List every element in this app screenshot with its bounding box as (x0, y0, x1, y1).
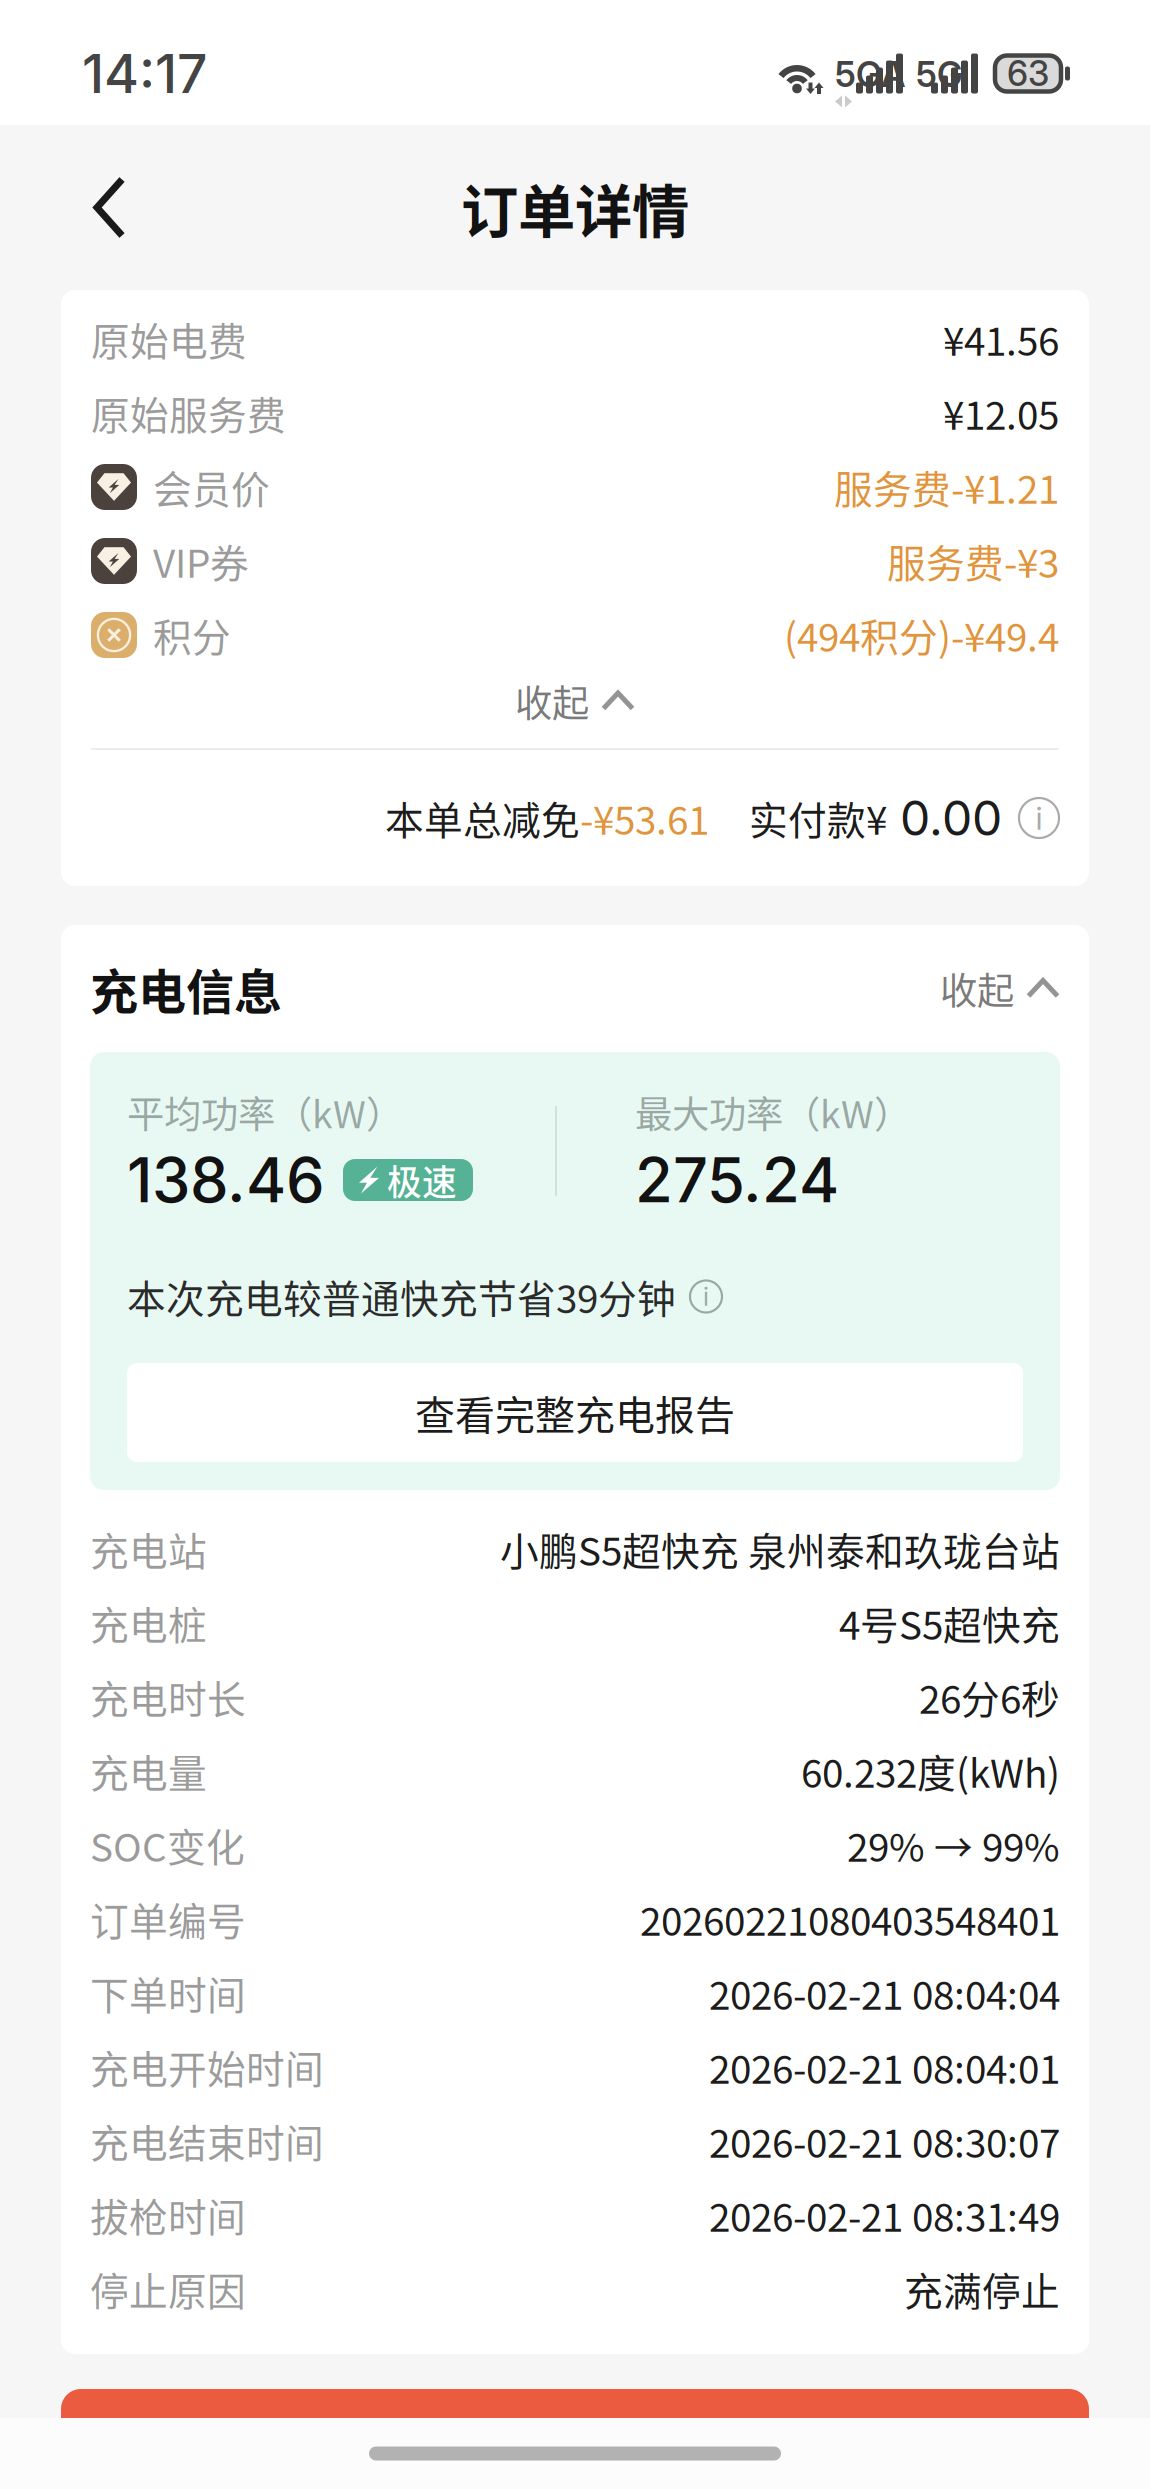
staticText: 订单详情 (461, 166, 689, 249)
staticText: 积分 (153, 607, 231, 663)
staticText: 60.232度(kWh) (801, 1743, 1060, 1799)
staticText: 原始服务费 (91, 385, 286, 441)
staticText: 收起 (940, 961, 1014, 1016)
staticText: VIP券 (153, 533, 249, 589)
staticText: 2026-02-21 08:30:07 (709, 2113, 1060, 2169)
button[interactable]: Back (72, 150, 150, 264)
staticText: 4号S5超快充 (839, 1595, 1060, 1651)
staticText: 5G (916, 53, 963, 95)
staticText: 本次充电较普通快充节省39分钟 (127, 1268, 676, 1324)
staticText: 26分6秒 (919, 1669, 1060, 1725)
staticText: 14:17 (82, 41, 207, 106)
staticText: 0.00 (900, 789, 1002, 847)
staticText: i (703, 1281, 709, 1312)
staticText: 服务费-¥3 (887, 533, 1059, 589)
button[interactable]: Promotion (61, 2389, 1089, 2489)
staticText: 订单编号 (90, 1891, 246, 1947)
staticText: -¥53.61 (580, 790, 709, 846)
button[interactable]: 收起 (91, 672, 1059, 748)
staticText: 实付款¥ (749, 790, 887, 846)
staticText: 63 (1007, 52, 1049, 94)
staticText: 2026-02-21 08:31:49 (709, 2187, 1060, 2243)
button[interactable]: 查看完整充电报告 (127, 1363, 1023, 1462)
staticText: SOC变化 (90, 1817, 245, 1873)
staticText: 收起 (515, 674, 589, 728)
staticText: 2026-02-21 08:04:01 (709, 2039, 1060, 2095)
staticText: ¥12.05 (943, 385, 1059, 441)
staticText: 充电结束时间 (90, 2113, 324, 2169)
staticText: 查看完整充电报告 (415, 1383, 735, 1441)
staticText: 下单时间 (90, 1965, 246, 2021)
staticText: ¥41.56 (943, 311, 1059, 367)
staticText: (494积分)-¥49.4 (784, 607, 1059, 663)
staticText: 会员价 (153, 459, 270, 515)
staticText: 275.24 (635, 1143, 839, 1217)
button[interactable]: 收起 (940, 961, 1060, 1016)
staticText: 138.46 (127, 1143, 325, 1217)
staticText: 20260221080403548401 (640, 1891, 1060, 1947)
staticText: 本单总减免 (385, 790, 580, 846)
staticText: 充电时长 (90, 1669, 246, 1725)
staticText: 极速 (387, 1155, 457, 1205)
staticText: 充电量 (90, 1743, 207, 1799)
staticText: 平均功率（kW） (127, 1085, 403, 1139)
staticText: 充电开始时间 (90, 2039, 324, 2095)
staticText: 充电站 (90, 1521, 207, 1577)
staticText: 29% → 99% (847, 1817, 1060, 1873)
staticText: 充满停止 (904, 2261, 1060, 2317)
staticText: 拔枪时间 (90, 2187, 246, 2243)
staticText: 服务费-¥1.21 (834, 459, 1059, 515)
staticText: 5GA (835, 53, 905, 95)
staticText: i (1035, 799, 1042, 837)
staticText: 小鹏S5超快充 泉州泰和玖珑台站 (500, 1521, 1060, 1577)
staticText: 停止原因 (90, 2261, 246, 2317)
staticText: 最大功率（kW） (635, 1085, 911, 1139)
staticText: 原始电费 (91, 311, 247, 367)
staticText: 充电桩 (90, 1595, 207, 1651)
staticText: 充电信息 (90, 954, 282, 1023)
staticText: 2026-02-21 08:04:04 (709, 1965, 1060, 2021)
